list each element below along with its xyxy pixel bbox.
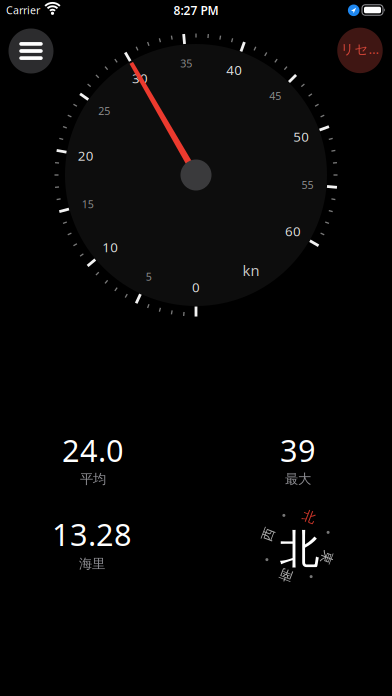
staticText: 0	[192, 278, 200, 296]
staticText: 海里	[79, 556, 105, 572]
staticText: 13.28	[52, 514, 132, 554]
staticText: 25	[98, 104, 110, 118]
staticText: 24.0	[62, 430, 124, 470]
staticText: 10	[102, 238, 118, 256]
staticText: 55	[302, 178, 314, 192]
staticText: 5	[146, 269, 152, 284]
staticText: 北	[302, 508, 315, 525]
staticText: Carrier	[6, 3, 40, 17]
staticText: 50	[293, 128, 309, 145]
staticText: 30	[132, 69, 148, 87]
staticText: 最大	[285, 471, 311, 487]
staticText: 35	[180, 56, 192, 70]
staticText: 40	[226, 61, 242, 79]
button[interactable]: リセット	[337, 28, 383, 73]
staticText: kn	[242, 260, 259, 280]
staticText: リセ…	[340, 40, 379, 58]
staticText: 20	[78, 147, 94, 164]
staticText: 39	[280, 430, 316, 470]
staticText: 南	[280, 567, 293, 584]
staticText: 8:27 PM	[173, 2, 218, 18]
staticText: 平均	[80, 471, 106, 487]
button[interactable]: Menu	[8, 28, 53, 73]
staticText: 15	[82, 197, 94, 211]
staticText: 西	[262, 526, 275, 543]
staticText: 東	[320, 549, 333, 565]
staticText: 北	[279, 525, 319, 574]
staticText: 60	[285, 222, 301, 240]
staticText: 45	[269, 89, 281, 103]
